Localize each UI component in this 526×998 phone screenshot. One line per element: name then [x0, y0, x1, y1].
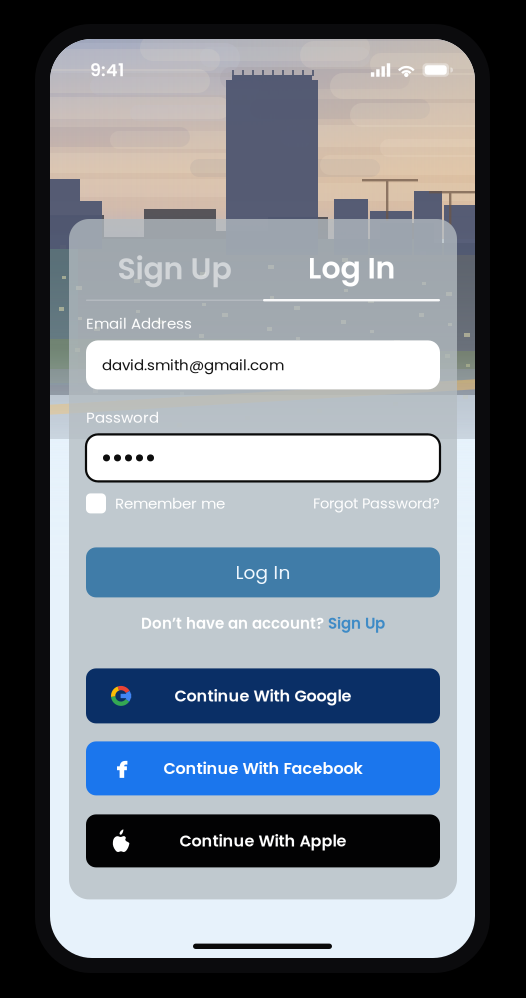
- staticText: Continue With Google: [174, 685, 351, 707]
- button[interactable]: Remember me: [86, 493, 225, 514]
- button[interactable]: Forgot Password?: [313, 493, 440, 514]
- staticText: Continue With Facebook: [163, 757, 362, 780]
- staticText: Continue With Apple: [179, 830, 346, 852]
- button[interactable]: Continue With Google: [86, 668, 440, 723]
- staticText: Log In: [235, 559, 290, 585]
- button[interactable]: Log In: [263, 237, 440, 301]
- button[interactable]: Sign Up: [86, 238, 263, 301]
- staticText: 9:41: [90, 58, 124, 82]
- button[interactable]: Continue With Apple: [86, 814, 440, 867]
- staticText: Don’t have an account?: [141, 613, 328, 634]
- staticText: Sign Up: [117, 248, 231, 290]
- staticText: david.smith@gmail.com: [102, 354, 284, 375]
- staticText: Log In: [307, 247, 395, 289]
- staticText: Email Address: [86, 313, 192, 334]
- staticText: Sign Up: [328, 613, 385, 634]
- button[interactable]: Sign Up: [328, 613, 385, 634]
- button[interactable]: Log In: [86, 547, 440, 597]
- button[interactable]: Continue With Facebook: [86, 741, 440, 795]
- staticText: Forgot Password?: [313, 493, 440, 514]
- staticText: Password: [86, 407, 159, 428]
- staticText: Remember me: [115, 493, 225, 514]
